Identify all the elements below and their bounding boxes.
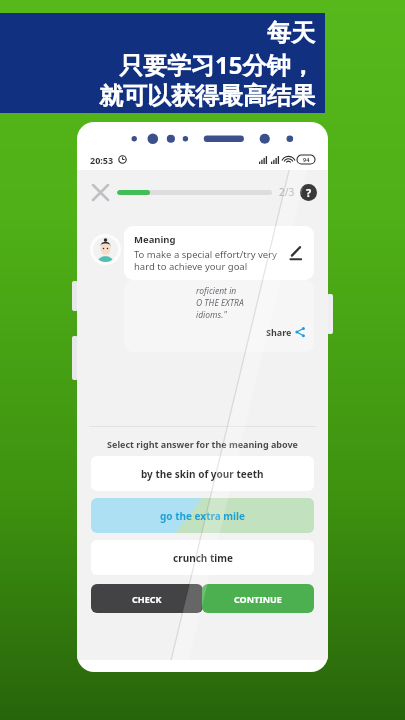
- button[interactable]: go the extra mile: [91, 498, 314, 533]
- button[interactable]: Close: [88, 180, 112, 204]
- staticText: roficient in: [196, 285, 237, 297]
- staticText: 每天: [267, 18, 315, 48]
- button[interactable]: Share: [196, 326, 305, 338]
- staticText: 就可以获得最高结果: [99, 81, 315, 111]
- button[interactable]: by the skin of your teeth: [91, 456, 314, 491]
- staticText: 20:53: [90, 154, 114, 166]
- staticText: go the extra mile: [160, 509, 246, 523]
- staticText: O THE EXTRA: [196, 297, 244, 309]
- staticText: Share: [266, 326, 292, 338]
- button[interactable]: CHECK: [91, 584, 203, 613]
- staticText: 2/3: [279, 185, 295, 199]
- staticText: idioms.": [196, 309, 227, 321]
- button[interactable]: Edit: [284, 242, 306, 264]
- staticText: crunch time: [173, 551, 233, 565]
- staticText: Select right answer for the meaning abov…: [77, 438, 328, 450]
- button[interactable]: crunch time: [91, 540, 314, 575]
- staticText: by the skin of your teeth: [141, 467, 264, 481]
- staticText: 94: [303, 156, 310, 163]
- button[interactable]: Help: [300, 184, 317, 201]
- staticText: Meaning: [134, 233, 176, 246]
- button[interactable]: CONTINUE: [202, 584, 314, 613]
- staticText: ?: [306, 185, 312, 200]
- staticText: CHECK: [132, 593, 162, 605]
- staticText: 只要学习15分钟，: [119, 48, 315, 81]
- staticText: To make a special effort/try very hard t…: [134, 248, 277, 273]
- staticText: CONTINUE: [234, 593, 282, 605]
